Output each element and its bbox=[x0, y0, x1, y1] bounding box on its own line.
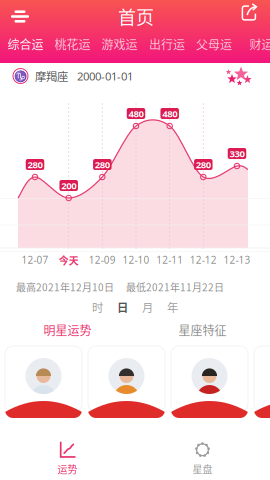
staticText: 12-12 bbox=[190, 253, 217, 267]
staticText: 游戏运 bbox=[101, 35, 137, 53]
button[interactable]: 综合运 bbox=[6, 33, 44, 55]
staticText: 父母运 bbox=[196, 35, 232, 53]
button[interactable]: 时 bbox=[85, 296, 110, 318]
staticText: 12-13 bbox=[223, 253, 250, 267]
staticText: 星盘 bbox=[192, 462, 212, 476]
staticText: 财运 bbox=[249, 35, 270, 53]
button[interactable]: 月 bbox=[135, 296, 160, 318]
button[interactable]: 财运 bbox=[242, 33, 270, 55]
staticText: 时 bbox=[92, 299, 103, 315]
button[interactable]: 桃花运 bbox=[53, 33, 91, 55]
button[interactable]: 星座特征 bbox=[135, 318, 270, 342]
staticText: 首页 bbox=[118, 3, 154, 30]
button[interactable]: 父母运 bbox=[195, 33, 233, 55]
staticText: 运势 bbox=[57, 462, 77, 476]
staticText: 月 bbox=[142, 299, 153, 315]
staticText: ♑ bbox=[14, 70, 27, 82]
staticText: 280 bbox=[196, 158, 211, 171]
staticText: 日 bbox=[117, 299, 128, 315]
staticText: 最低2021年11月22日 bbox=[126, 280, 224, 294]
staticText: 12-07 bbox=[21, 253, 48, 267]
staticText: 综合运 bbox=[7, 35, 43, 53]
button[interactable]: Menu bbox=[7, 1, 35, 31]
button[interactable]: Share bbox=[237, 1, 263, 31]
staticText: 280 bbox=[95, 158, 110, 171]
staticText: 2000-01-01 bbox=[77, 68, 133, 84]
button[interactable]: 日 bbox=[110, 296, 135, 318]
staticText: 今天 bbox=[59, 253, 79, 267]
staticText: 最高2021年12月10日 bbox=[16, 280, 114, 294]
button[interactable]: 年 bbox=[160, 296, 185, 318]
button[interactable]: 明星运势 bbox=[0, 318, 135, 342]
staticText: 12-10 bbox=[122, 253, 149, 267]
button[interactable]: 出行运 bbox=[148, 33, 186, 55]
staticText: 年 bbox=[167, 299, 178, 315]
staticText: 星座特征 bbox=[178, 321, 226, 339]
staticText: 280 bbox=[27, 158, 42, 171]
staticText: 摩羯座 bbox=[35, 68, 68, 84]
staticText: 200 bbox=[61, 179, 76, 192]
staticText: 明星运势 bbox=[43, 321, 91, 339]
button[interactable]: 游戏运 bbox=[100, 33, 138, 55]
button[interactable]: 星盘 bbox=[135, 438, 270, 478]
staticText: 480 bbox=[128, 107, 143, 120]
staticText: 桃花运 bbox=[54, 35, 90, 53]
staticText: 480 bbox=[162, 107, 177, 120]
button[interactable]: 运势 bbox=[0, 438, 135, 478]
staticText: 12-09 bbox=[89, 253, 116, 267]
staticText: 出行运 bbox=[149, 35, 185, 53]
staticText: 330 bbox=[229, 147, 244, 160]
staticText: 12-11 bbox=[156, 253, 183, 267]
